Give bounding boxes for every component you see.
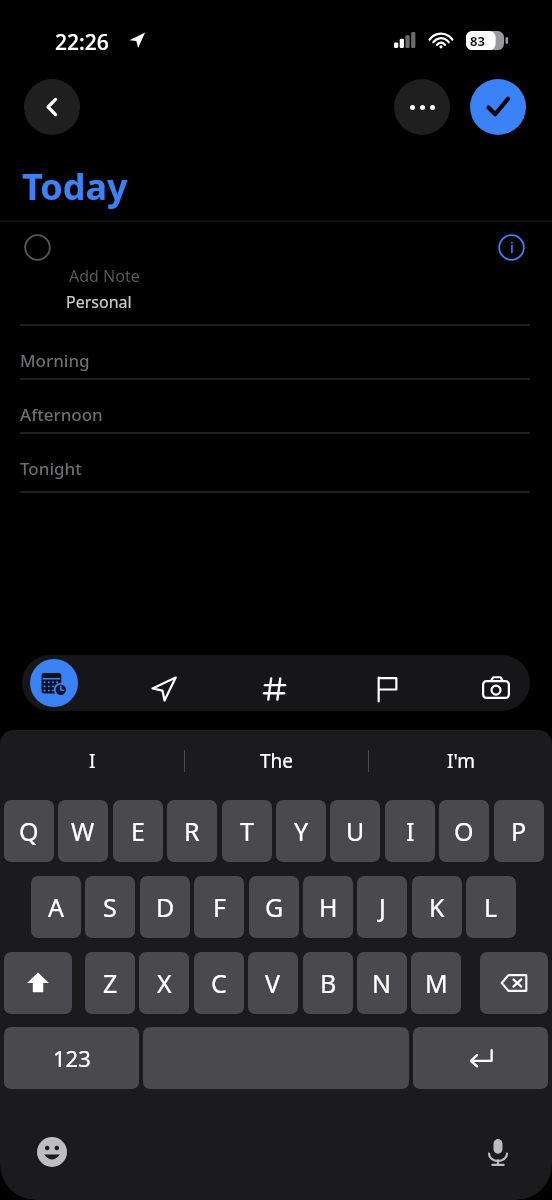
button[interactable]: More options — [394, 79, 450, 135]
button[interactable]: Emoji — [30, 1130, 74, 1174]
staticText: Z — [103, 966, 118, 1000]
button[interactable]: Flag — [365, 667, 409, 711]
staticText: D — [156, 890, 175, 924]
staticText: I — [89, 748, 96, 774]
staticText: K — [429, 890, 445, 924]
button[interactable]: Add date — [30, 659, 78, 707]
staticText: Afternoon — [20, 403, 103, 426]
button[interactable]: Voice input — [476, 1130, 520, 1174]
button[interactable]: D — [140, 876, 190, 938]
button[interactable]: Morning — [20, 337, 530, 383]
button[interactable]: Back — [24, 79, 80, 135]
staticText: E — [131, 814, 145, 848]
staticText: P — [511, 814, 527, 848]
staticText: R — [184, 814, 200, 848]
button[interactable]: Add location — [142, 667, 186, 711]
button[interactable]: I — [0, 730, 184, 792]
button[interactable]: 123 — [4, 1027, 139, 1089]
button[interactable]: V — [248, 952, 298, 1014]
button[interactable]: P — [494, 800, 544, 862]
button[interactable]: R — [167, 800, 217, 862]
button[interactable]: Afternoon — [20, 391, 530, 437]
staticText: L — [484, 890, 498, 924]
button[interactable]: B — [303, 952, 353, 1014]
button[interactable]: C — [194, 952, 244, 1014]
staticText: O — [454, 814, 474, 848]
staticText: 83 — [470, 32, 485, 50]
staticText: C — [211, 966, 227, 1000]
staticText: B — [320, 966, 337, 1000]
staticText: V — [265, 966, 281, 1000]
staticText: I'm — [447, 748, 475, 774]
staticText: U — [346, 814, 365, 848]
button[interactable]: I'm — [369, 730, 552, 792]
button[interactable]: M — [411, 952, 461, 1014]
button[interactable]: L — [466, 876, 516, 938]
button[interactable]: Z — [85, 952, 135, 1014]
staticText: J — [379, 890, 386, 924]
staticText: S — [103, 890, 117, 924]
staticText: i — [510, 238, 514, 257]
button[interactable]: J — [357, 876, 407, 938]
button[interactable]: H — [303, 876, 353, 938]
button[interactable]: Y — [276, 800, 326, 862]
button[interactable]: Add tag — [253, 667, 297, 711]
staticText: Q — [19, 814, 39, 848]
staticText: 123 — [53, 1043, 91, 1073]
staticText: N — [372, 966, 392, 1000]
staticText: I — [406, 814, 415, 848]
button[interactable]: I — [385, 800, 435, 862]
staticText: H — [319, 890, 338, 924]
button[interactable]: Info — [498, 234, 525, 261]
button[interactable]: A — [31, 876, 81, 938]
staticText: F — [213, 890, 226, 924]
button[interactable]: G — [249, 876, 299, 938]
button[interactable]: W — [58, 800, 108, 862]
staticText: 22:26 — [55, 28, 109, 57]
button[interactable]: Tonight — [20, 445, 530, 491]
button[interactable]: F — [194, 876, 244, 938]
button[interactable]: Q — [4, 800, 54, 862]
button[interactable]: O — [439, 800, 489, 862]
button[interactable]: S — [85, 876, 135, 938]
button[interactable]: Add photo — [474, 667, 518, 711]
button[interactable]: X — [139, 952, 189, 1014]
button[interactable]: T — [222, 800, 272, 862]
staticText: W — [71, 814, 95, 848]
button[interactable]: U — [330, 800, 380, 862]
staticText: M — [425, 966, 448, 1000]
button[interactable]: K — [412, 876, 462, 938]
button[interactable]: Mark complete — [24, 234, 51, 261]
button[interactable]: E — [113, 800, 163, 862]
staticText: Personal — [66, 291, 132, 313]
button[interactable]: Return — [413, 1027, 548, 1089]
staticText: Y — [294, 814, 309, 848]
staticText: Tonight — [20, 457, 82, 480]
button[interactable]: Backspace — [480, 952, 548, 1014]
staticText: Morning — [20, 349, 90, 372]
staticText: X — [157, 966, 172, 1000]
staticText: G — [265, 890, 284, 924]
staticText: A — [48, 890, 64, 924]
button[interactable]: N — [357, 952, 407, 1014]
button[interactable]: Shift — [4, 952, 72, 1014]
staticText: The — [260, 748, 294, 774]
staticText: T — [240, 814, 254, 848]
button[interactable]: The — [185, 730, 368, 792]
button[interactable]: Done — [470, 79, 526, 135]
staticText: Today — [22, 162, 128, 211]
staticText: Add Note — [69, 265, 140, 287]
